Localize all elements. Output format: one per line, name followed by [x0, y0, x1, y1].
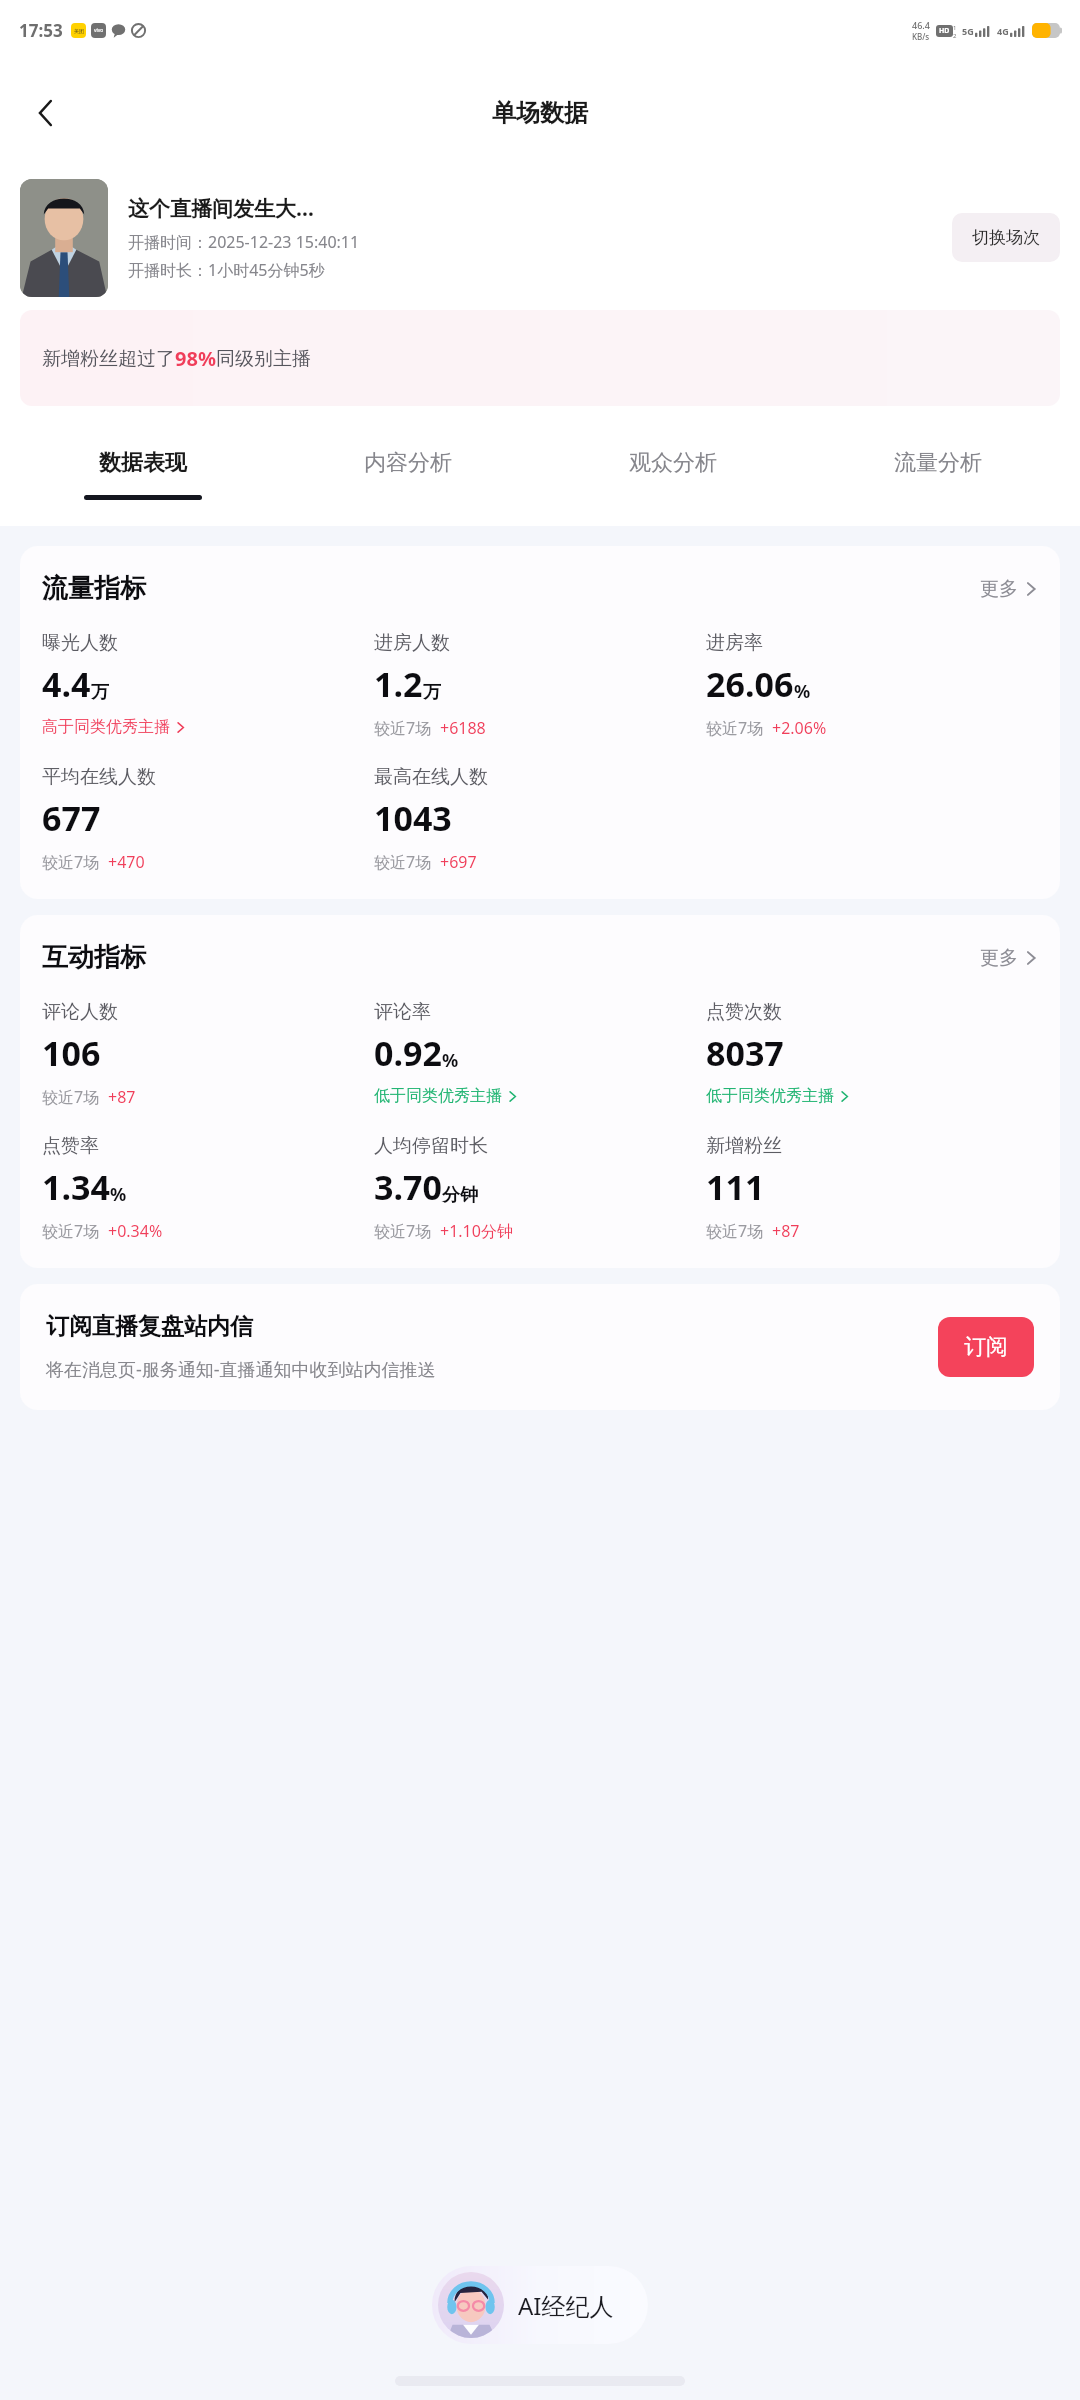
staticText: 订阅 [964, 1333, 1008, 1361]
staticText: 分钟 [442, 1184, 478, 1207]
staticText: KB/s [912, 31, 930, 42]
staticText: 较近7场 [706, 717, 764, 739]
staticText: 高于同类优秀主播 [42, 717, 170, 737]
staticText: 曝光人数 [42, 631, 118, 655]
staticText: 进房率 [706, 631, 763, 655]
staticText: +87 [772, 1220, 800, 1242]
staticText: % [794, 679, 811, 704]
staticText: 流量分析 [894, 449, 982, 477]
button[interactable]: 低于同类优秀主播 [374, 1086, 518, 1106]
button[interactable]: 返回 [18, 85, 74, 141]
staticText: 数据表现 [99, 449, 187, 477]
staticText: 这个直播间发生大… [128, 194, 314, 223]
button[interactable]: 更多 [980, 946, 1038, 970]
staticText: +2.06% [772, 717, 827, 739]
staticText: 1 [953, 24, 957, 32]
staticText: +87 [108, 1086, 136, 1108]
staticText: 互动指标 [42, 941, 146, 974]
staticText: 较近7场 [706, 1220, 764, 1242]
staticText: 5G [962, 25, 974, 37]
button[interactable]: 内容分析 [275, 406, 540, 526]
staticText: 较近7场 [42, 1220, 100, 1242]
staticText: 98% [175, 345, 216, 372]
staticText: 0.92 [374, 1030, 442, 1076]
staticText: 较近7场 [42, 851, 100, 873]
button[interactable]: 数据表现 [10, 406, 275, 526]
button[interactable]: 互动指标 [20, 915, 1060, 1268]
staticText: 更多 [980, 577, 1018, 601]
staticText: 进房人数 [374, 631, 450, 655]
button[interactable]: 流量指标 [20, 546, 1060, 899]
staticText: 低于同类优秀主播 [374, 1086, 502, 1106]
staticText: 677 [42, 795, 101, 841]
staticText: 3.70 [374, 1164, 442, 1210]
staticText: 人均停留时长 [374, 1134, 488, 1158]
staticText: 4.4 [42, 661, 91, 707]
button[interactable]: 切换场次 [952, 213, 1060, 262]
button[interactable]: 订阅 [938, 1317, 1034, 1377]
staticText: 低于同类优秀主播 [706, 1086, 834, 1106]
staticText: 106 [42, 1030, 101, 1076]
staticText: 流量指标 [42, 572, 146, 605]
staticText: 最高在线人数 [374, 765, 488, 789]
staticText: 切换场次 [972, 227, 1040, 248]
staticText: 较近7场 [374, 717, 432, 739]
staticText: 较近7场 [374, 1220, 432, 1242]
staticText: 万 [423, 681, 441, 704]
staticText: vivo [94, 27, 104, 34]
staticText: +697 [440, 851, 477, 873]
staticText: 将在消息页-服务通知-直播通知中收到站内信推送 [46, 1357, 436, 1382]
staticText: 26.06 [706, 661, 794, 707]
staticText: 美团 [74, 28, 84, 34]
staticText: 更多 [980, 946, 1018, 970]
staticText: 较近7场 [374, 851, 432, 873]
button[interactable]: 低于同类优秀主播 [706, 1086, 850, 1106]
staticText: 新增粉丝 [706, 1134, 782, 1158]
staticText: 新增粉丝超过了 [42, 347, 175, 371]
staticText: 平均在线人数 [42, 765, 156, 789]
button[interactable]: 观众分析 [540, 406, 805, 526]
staticText: 较近7场 [42, 1086, 100, 1108]
staticText: % [110, 1182, 127, 1207]
button[interactable]: 流量分析 [805, 406, 1070, 526]
button[interactable]: 新增粉丝超过了 [20, 310, 1060, 406]
staticText: 4G [997, 25, 1009, 37]
button[interactable]: 更多 [980, 577, 1038, 601]
staticText: +1.10分钟 [440, 1220, 513, 1242]
staticText: AI经纪人 [518, 2289, 614, 2322]
staticText: 开播时间：2025-12-23 15:40:11 [128, 231, 360, 253]
staticText: +0.34% [108, 1220, 163, 1242]
button[interactable]: AI经纪人 [432, 2266, 648, 2344]
staticText: 万 [91, 681, 109, 704]
staticText: 17:53 [19, 19, 63, 42]
staticText: % [442, 1048, 459, 1073]
staticText: 开播时长：1小时45分钟5秒 [128, 259, 325, 281]
staticText: 2 [953, 32, 957, 38]
staticText: 同级别主播 [216, 347, 311, 371]
staticText: 点赞率 [42, 1134, 99, 1158]
staticText: 1.34 [42, 1164, 110, 1210]
button[interactable]: 高于同类优秀主播 [42, 717, 186, 737]
staticText: 46.4 [912, 19, 930, 31]
staticText: HD [939, 26, 950, 36]
staticText: 评论率 [374, 1000, 431, 1024]
staticText: 1.2 [374, 661, 423, 707]
staticText: 订阅直播复盘站内信 [46, 1312, 253, 1341]
staticText: +470 [108, 851, 145, 873]
staticText: 评论人数 [42, 1000, 118, 1024]
staticText: 单场数据 [492, 98, 588, 128]
staticText: 内容分析 [364, 449, 452, 477]
staticText: +6188 [440, 717, 486, 739]
staticText: 观众分析 [629, 449, 717, 477]
staticText: 111 [706, 1164, 765, 1210]
staticText: 1043 [374, 795, 452, 841]
staticText: 8037 [706, 1030, 784, 1076]
staticText: 点赞次数 [706, 1000, 782, 1024]
